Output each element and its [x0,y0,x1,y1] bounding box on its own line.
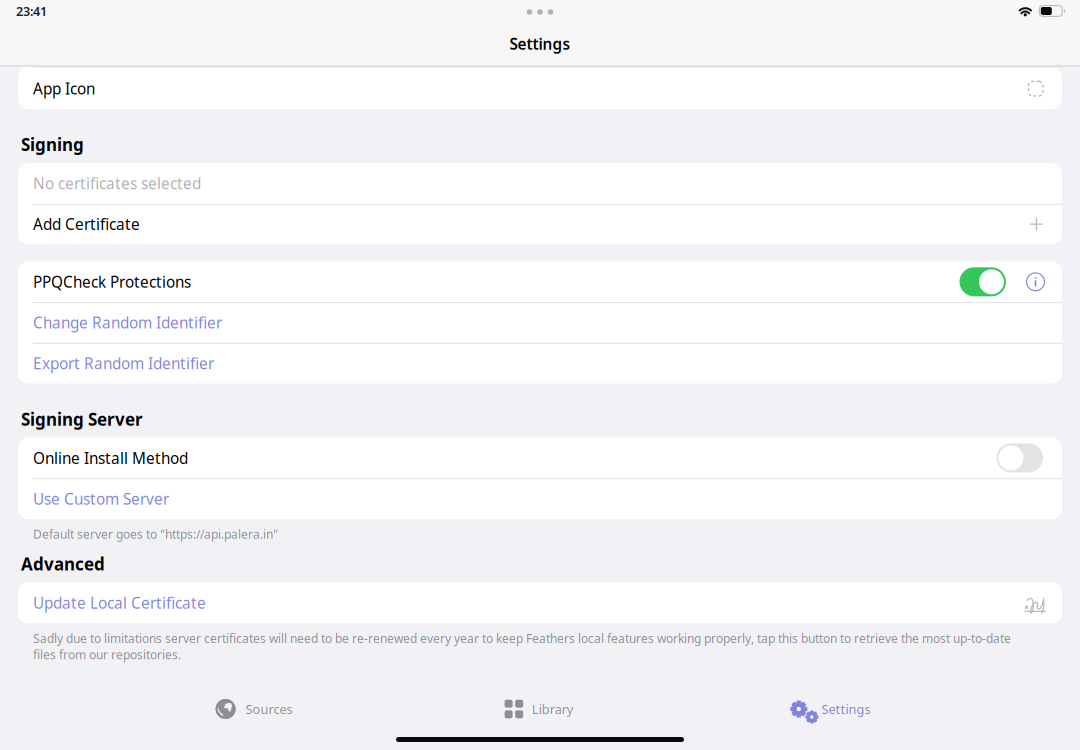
staticText: 23:41 [16,2,47,20]
button[interactable]: Update Local Certificate [18,582,1062,623]
button[interactable]: App Icon [18,68,1062,109]
staticText: Settings [509,33,570,54]
staticText: PPQCheck Protections [33,271,191,292]
staticText: Library [532,700,573,718]
staticText: Settings [821,700,870,718]
staticText: Signing Server [21,408,143,431]
button[interactable]: PPQCheck Protections [959,267,1006,296]
staticText: No certificates selected [33,173,201,194]
staticText: Sadly due to limitations server certific… [33,630,1011,663]
button[interactable]: Export Random Identifier [18,343,1062,384]
button[interactable]: Add Certificate [18,204,1062,244]
staticText: Add Certificate [33,214,140,235]
staticText: Advanced [21,552,105,575]
staticText: App Icon [33,78,95,99]
button[interactable]: Sources [210,691,299,727]
button[interactable]: Settings [779,689,876,728]
staticText: Change Random Identifier [33,312,222,333]
button[interactable]: Library [499,692,579,726]
staticText: Online Install Method [33,447,188,468]
button[interactable]: About PPQCheck Protections [1026,272,1045,291]
staticText: Use Custom Server [33,488,169,509]
button[interactable]: Online Install Method [996,443,1043,472]
staticText: Default server goes to "https://api.pale… [33,526,278,542]
staticText: Update Local Certificate [33,592,206,613]
staticText: Sources [246,700,293,718]
staticText: Signing [21,133,84,156]
staticText: Export Random Identifier [33,353,214,374]
button[interactable]: Use Custom Server [18,478,1062,519]
button[interactable]: Change Random Identifier [18,302,1062,343]
